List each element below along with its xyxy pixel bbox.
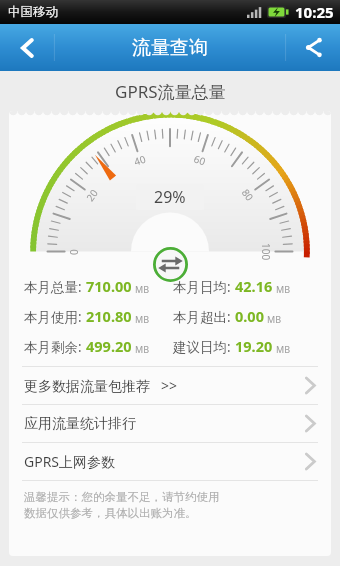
- staticText: 本月总量:: [24, 278, 82, 296]
- staticText: 499.20: [86, 336, 132, 356]
- staticText: 60: [192, 151, 208, 168]
- staticText: 本月超出:: [173, 308, 231, 326]
- staticText: 0.00: [235, 306, 264, 326]
- staticText: 210.80: [86, 306, 132, 326]
- staticText: MB: [276, 343, 291, 355]
- staticText: MB: [135, 313, 150, 325]
- staticText: MB: [135, 343, 150, 355]
- staticText: 本月剩余:: [24, 338, 82, 356]
- staticText: 100: [259, 243, 273, 261]
- staticText: 更多数据流量包推荐 >>: [24, 376, 177, 395]
- button[interactable]: 分享: [286, 24, 340, 71]
- staticText: 0: [67, 249, 81, 255]
- staticText: 29%: [154, 186, 186, 208]
- staticText: 本月使用:: [24, 308, 82, 326]
- button[interactable]: 更多数据流量包推荐 >>: [9, 367, 331, 404]
- staticText: 10:25: [295, 2, 334, 22]
- staticText: GPRS上网参数: [24, 452, 116, 471]
- button[interactable]: 返回: [0, 24, 54, 71]
- staticText: 建议日均:: [173, 338, 231, 356]
- button[interactable]: 切换流量: [153, 247, 188, 282]
- staticText: MB: [135, 283, 150, 295]
- staticText: 19.20: [235, 336, 273, 356]
- button[interactable]: GPRS上网参数: [9, 443, 331, 480]
- button[interactable]: 应用流量统计排行: [9, 405, 331, 442]
- staticText: 应用流量统计排行: [24, 415, 136, 433]
- staticText: 40: [132, 151, 148, 168]
- staticText: 710.00: [86, 276, 132, 296]
- staticText: MB: [267, 313, 282, 325]
- staticText: 中国移动: [8, 4, 58, 20]
- staticText: GPRS流量总量: [115, 80, 226, 103]
- staticText: 80: [239, 186, 257, 204]
- staticText: 42.16: [235, 276, 273, 296]
- staticText: 流量查询: [132, 36, 208, 60]
- staticText: MB: [276, 283, 291, 295]
- staticText: 本月日均:: [173, 278, 231, 296]
- staticText: 20: [83, 186, 101, 204]
- staticText: 温馨提示：您的余量不足，请节约使用 数据仅供参考，具体以出账为准。: [24, 490, 220, 520]
